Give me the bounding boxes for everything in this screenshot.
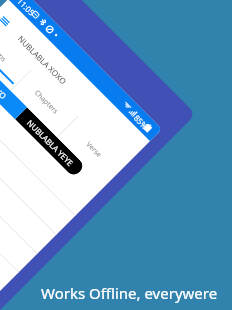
staticText: XOXO bbox=[0, 78, 9, 101]
staticText: 11:05 bbox=[15, 0, 38, 18]
button[interactable]: Chapters bbox=[32, 88, 60, 116]
staticText: 85% bbox=[132, 112, 151, 131]
button[interactable]: NUBLABLA YEYE bbox=[15, 107, 86, 178]
button[interactable]: Verse bbox=[84, 140, 104, 160]
button[interactable]: Psalms bbox=[0, 41, 9, 65]
button[interactable]: XOXO bbox=[0, 44, 27, 119]
staticText: NUBLABLA YEYE bbox=[25, 117, 76, 168]
staticText: Works Offline, everywere bbox=[41, 283, 218, 303]
button[interactable]: Open navigation menu bbox=[0, 15, 11, 27]
staticText: NUBLABLA XOXO bbox=[16, 33, 69, 87]
